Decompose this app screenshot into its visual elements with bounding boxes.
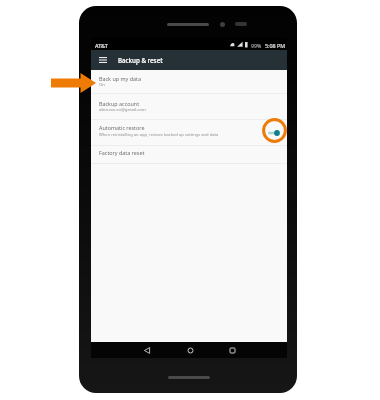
button[interactable]: Home bbox=[180, 342, 200, 358]
button[interactable]: Open navigation drawer bbox=[95, 50, 110, 70]
staticText: Backup & reset bbox=[118, 56, 163, 64]
staticText: Automatic restore bbox=[99, 124, 145, 131]
staticText: 5:08 PM bbox=[265, 42, 286, 49]
staticText: On bbox=[99, 81, 106, 87]
staticText: Back up my data bbox=[99, 75, 141, 82]
staticText: 99% bbox=[251, 42, 262, 49]
staticText: abcxxxx.xx@gmail.com bbox=[99, 106, 146, 112]
button[interactable]: Backup account bbox=[91, 94, 287, 119]
button[interactable]: Automatic restore toggle, on bbox=[267, 127, 281, 139]
button[interactable]: Recent apps bbox=[222, 342, 242, 358]
button[interactable]: Automatic restore bbox=[91, 120, 287, 145]
staticText: Factory data reset bbox=[99, 149, 145, 156]
staticText: Backup account bbox=[99, 100, 140, 107]
button[interactable]: Factory data reset bbox=[91, 146, 287, 163]
button[interactable]: Back bbox=[137, 342, 157, 358]
button[interactable]: Back up my data bbox=[91, 70, 287, 93]
staticText: When reinstalling an app, restore backed… bbox=[99, 132, 219, 138]
staticText: AT&T bbox=[95, 42, 108, 49]
